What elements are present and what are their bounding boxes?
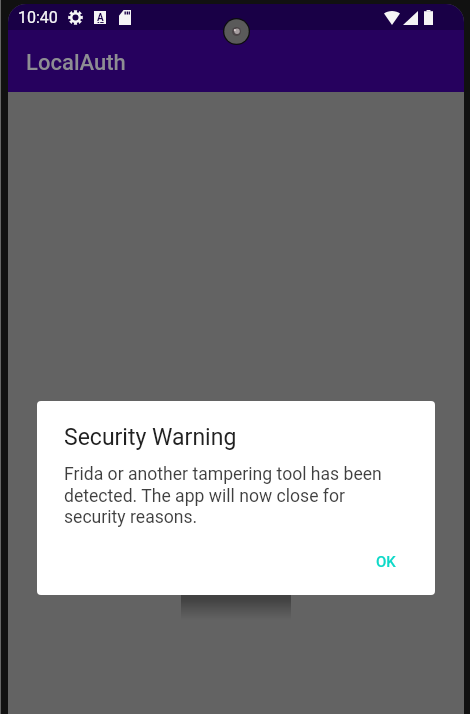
staticText: LocalAuth bbox=[26, 50, 126, 76]
other: Accessibility bbox=[94, 11, 106, 24]
other: Mobile signal bbox=[403, 11, 418, 25]
staticText: Frida or another tampering tool has been… bbox=[64, 464, 400, 527]
staticText: Security Warning bbox=[64, 424, 237, 451]
button[interactable]: OK bbox=[353, 545, 427, 579]
other: Camera bbox=[223, 18, 250, 45]
staticText: OK bbox=[376, 553, 396, 571]
staticText: A bbox=[97, 12, 104, 24]
other: Wi-Fi bbox=[384, 11, 400, 25]
other: Developer options bbox=[68, 10, 83, 25]
other: Battery bbox=[424, 10, 433, 25]
staticText: 10:40 bbox=[18, 8, 58, 27]
button[interactable]: Authenticate bbox=[181, 584, 291, 620]
other: SD card bbox=[119, 10, 131, 25]
